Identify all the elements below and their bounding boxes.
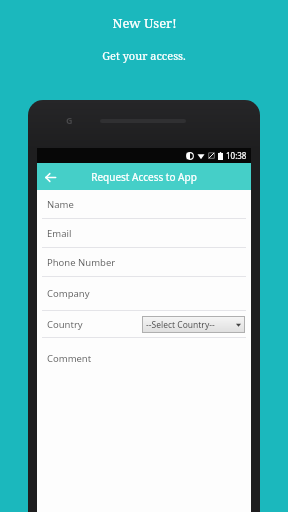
staticText: Get your access. [102,48,186,63]
staticText: Country [47,318,83,331]
button[interactable]: --Select Country-- [142,316,245,333]
staticText: Email [47,227,72,240]
staticText: Comment [47,352,92,365]
button[interactable]: Phone Number [37,248,251,277]
button[interactable]: Country [37,311,251,338]
staticText: Phone Number [47,256,116,269]
button[interactable]: Company [37,277,251,311]
staticText: Name [47,198,74,211]
button[interactable]: Comment [37,338,251,378]
button[interactable]: Back [37,164,63,190]
button[interactable]: Name [37,190,251,219]
staticText: Company [47,287,90,300]
staticText: 10:38 [226,150,247,161]
staticText: Request Access to App [91,170,197,184]
staticText: G [66,114,73,126]
staticText: New User! [112,14,177,32]
staticText: --Select Country-- [146,319,215,331]
button[interactable]: Email [37,219,251,248]
